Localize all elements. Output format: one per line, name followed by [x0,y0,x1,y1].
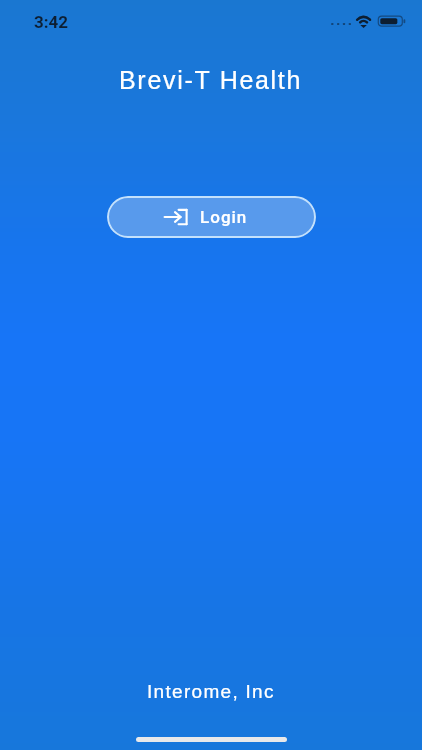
staticText: Brevi-T Health [119,66,303,94]
staticText: Interome, Inc [147,681,275,702]
button[interactable]: Login [107,196,316,238]
staticText: Login [200,207,248,227]
staticText: 3:42 [34,12,69,32]
other: Login [164,207,189,227]
